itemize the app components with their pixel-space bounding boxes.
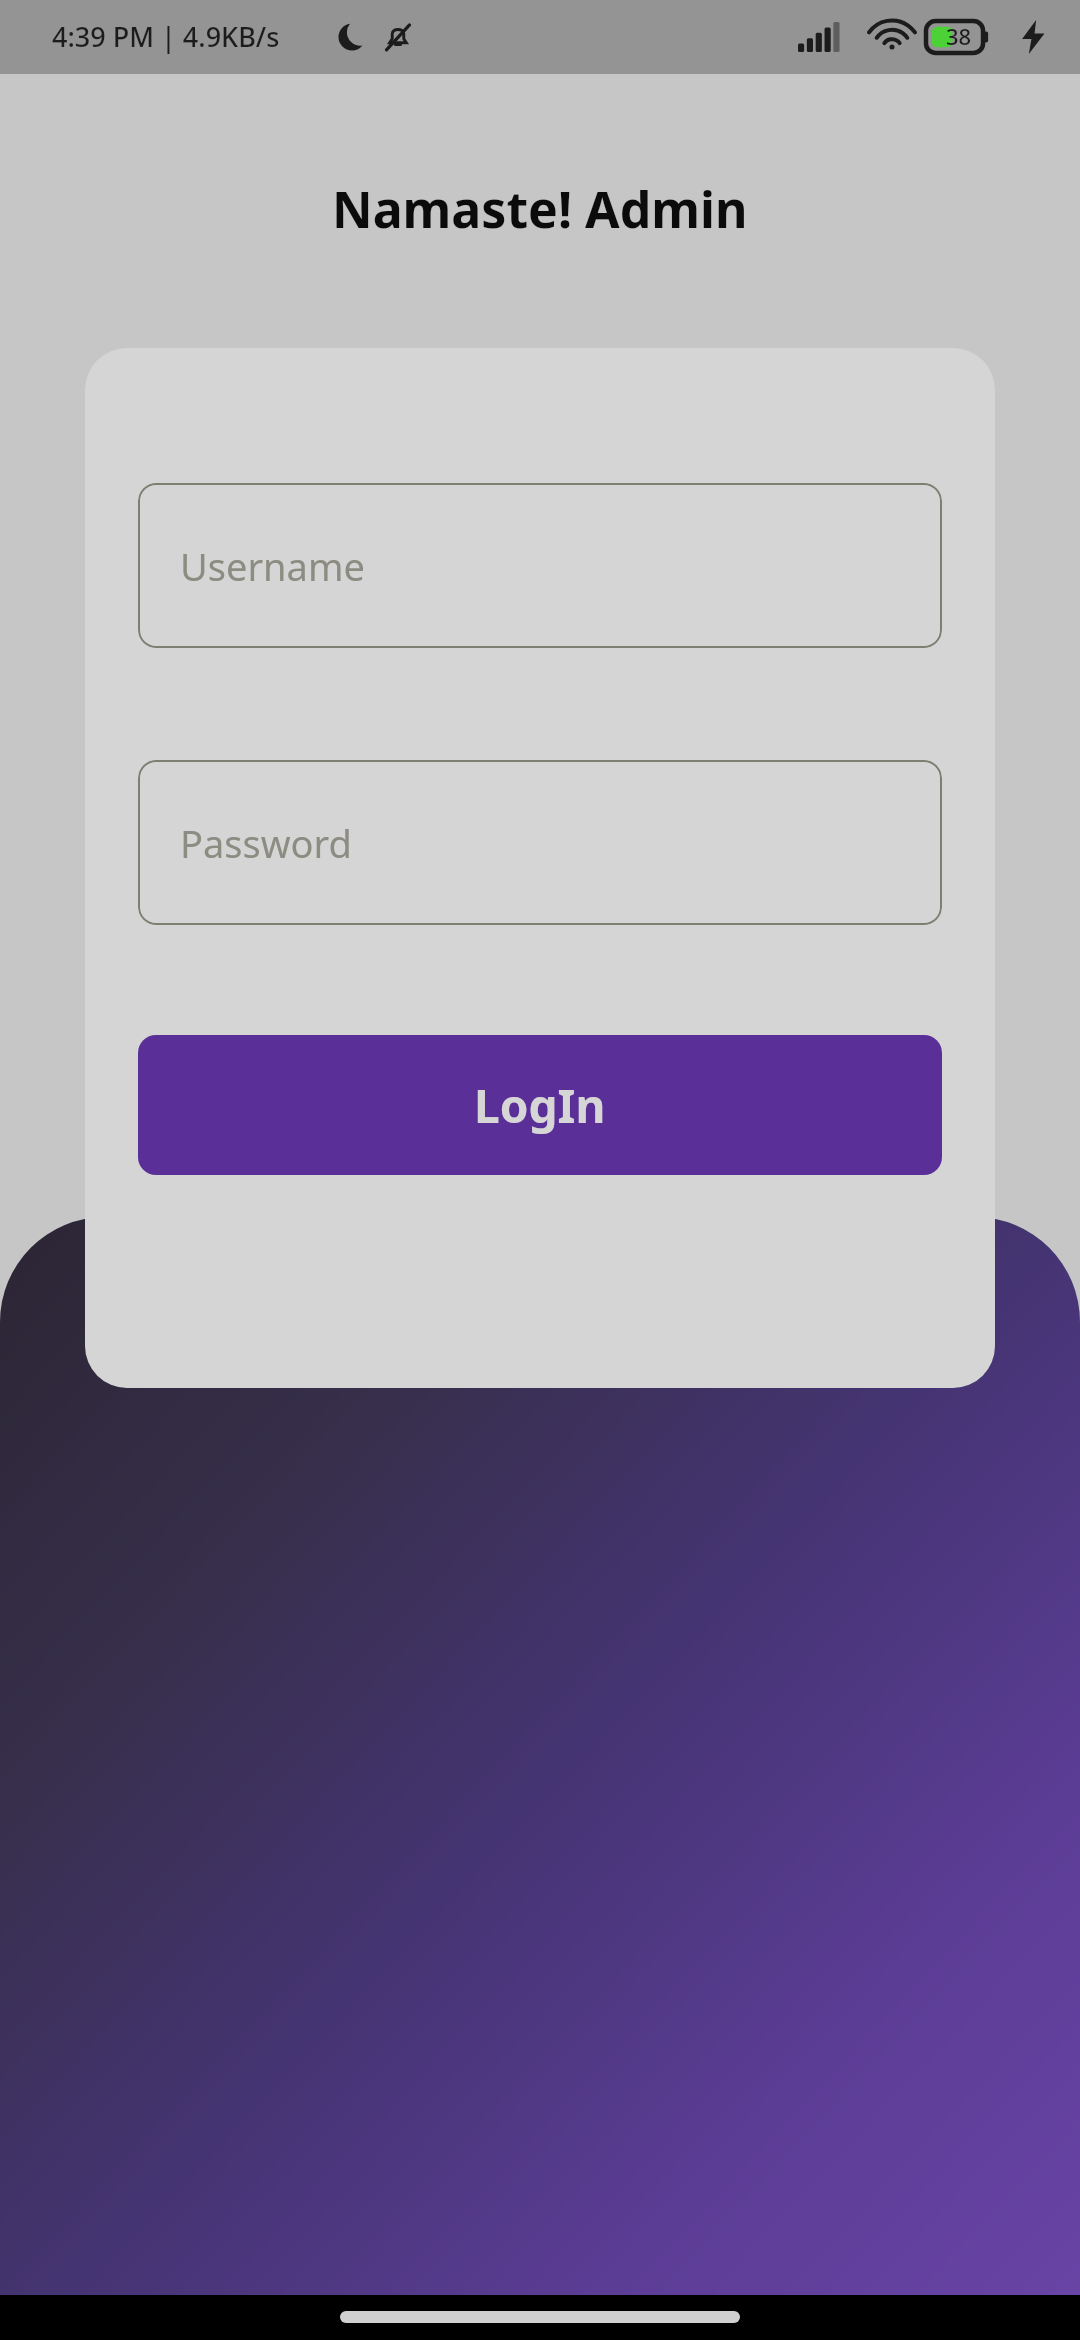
staticText: 4:39 PM | 4.9KB/s (52, 18, 280, 55)
button[interactable]: Password (138, 760, 942, 925)
staticText: 38 (946, 21, 972, 51)
staticText: Password (180, 817, 352, 869)
staticText: Username (180, 540, 365, 592)
button[interactable]: Username (138, 483, 942, 648)
staticText: Namaste! Admin (332, 175, 748, 243)
staticText: LogIn (474, 1074, 606, 1137)
button[interactable]: LogIn (138, 1035, 942, 1175)
